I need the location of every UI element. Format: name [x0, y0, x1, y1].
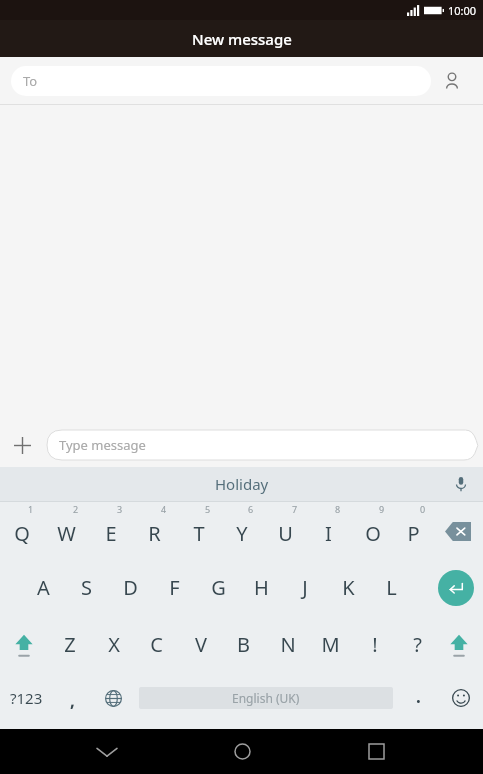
- button[interactable]: .: [398, 674, 438, 722]
- staticText: New message: [192, 29, 292, 49]
- staticText: F: [169, 574, 180, 601]
- staticText: 8: [335, 503, 341, 515]
- staticText: 9: [379, 503, 385, 515]
- button[interactable]: M: [309, 616, 352, 672]
- staticText: T: [193, 520, 205, 547]
- staticText: X: [108, 631, 120, 658]
- staticText: 7: [292, 503, 298, 515]
- staticText: J: [302, 574, 308, 601]
- staticText: B: [237, 631, 250, 658]
- button[interactable]: H: [240, 559, 283, 615]
- button[interactable]: Emoji: [440, 674, 482, 722]
- button[interactable]: 6: [220, 502, 263, 558]
- staticText: D: [123, 574, 138, 601]
- button[interactable]: 4: [133, 502, 176, 558]
- staticText: R: [148, 520, 161, 547]
- staticText: A: [37, 574, 50, 601]
- button[interactable]: Holiday: [215, 474, 269, 494]
- staticText: C: [150, 631, 163, 658]
- button[interactable]: ,: [52, 674, 92, 722]
- button[interactable]: 1: [0, 502, 43, 558]
- button[interactable]: 5: [177, 502, 220, 558]
- button[interactable]: D: [109, 559, 152, 615]
- button[interactable]: Back: [79, 729, 135, 774]
- button[interactable]: ?123: [2, 674, 50, 722]
- staticText: Q: [14, 520, 30, 547]
- button[interactable]: G: [197, 559, 240, 615]
- staticText: O: [365, 520, 381, 547]
- button[interactable]: J: [283, 559, 326, 615]
- staticText: S: [81, 574, 92, 601]
- button[interactable]: 3: [89, 502, 132, 558]
- staticText: Y: [236, 520, 248, 547]
- staticText: K: [342, 574, 355, 601]
- button[interactable]: Change language: [93, 674, 133, 722]
- button[interactable]: B: [222, 616, 265, 672]
- staticText: N: [280, 631, 296, 658]
- staticText: 3: [117, 503, 123, 515]
- staticText: .: [416, 685, 421, 708]
- button[interactable]: K: [327, 559, 370, 615]
- button[interactable]: Home: [214, 729, 270, 774]
- button[interactable]: N: [266, 616, 309, 672]
- staticText: I: [325, 520, 332, 547]
- button[interactable]: A: [22, 559, 65, 615]
- button[interactable]: Shift: [2, 619, 46, 671]
- staticText: English (UK): [232, 690, 300, 706]
- button[interactable]: Voice input: [447, 470, 475, 498]
- button[interactable]: Add attachment: [8, 431, 36, 459]
- staticText: 10:00: [448, 3, 477, 18]
- staticText: 1: [28, 503, 34, 515]
- button[interactable]: ?: [396, 616, 439, 672]
- staticText: H: [254, 574, 269, 601]
- button[interactable]: Pick contact: [431, 57, 472, 105]
- button[interactable]: 2: [45, 502, 88, 558]
- button[interactable]: 0: [392, 502, 435, 558]
- button[interactable]: S: [65, 559, 108, 615]
- staticText: G: [211, 574, 226, 601]
- staticText: Type message: [59, 436, 146, 454]
- staticText: P: [407, 520, 420, 547]
- staticText: U: [278, 520, 293, 547]
- button[interactable]: Enter: [433, 565, 479, 611]
- staticText: V: [195, 631, 207, 658]
- button[interactable]: To: [11, 66, 431, 96]
- staticText: Z: [64, 631, 76, 658]
- button[interactable]: Shift: [437, 619, 481, 671]
- button[interactable]: 9: [351, 502, 394, 558]
- button[interactable]: !: [353, 616, 396, 672]
- staticText: 2: [73, 503, 79, 515]
- staticText: To: [23, 72, 38, 90]
- button[interactable]: Type message: [47, 430, 483, 460]
- staticText: 5: [205, 503, 211, 515]
- button[interactable]: F: [153, 559, 196, 615]
- staticText: 4: [161, 503, 167, 515]
- button[interactable]: C: [135, 616, 178, 672]
- button[interactable]: L: [370, 559, 413, 615]
- button[interactable]: Backspace: [436, 506, 480, 556]
- button[interactable]: X: [92, 616, 135, 672]
- staticText: ?: [413, 631, 422, 658]
- button[interactable]: English (UK): [139, 687, 393, 709]
- button[interactable]: V: [179, 616, 222, 672]
- staticText: 6: [248, 503, 254, 515]
- staticText: 0: [420, 503, 426, 515]
- staticText: !: [372, 631, 378, 658]
- button[interactable]: 7: [264, 502, 307, 558]
- staticText: ?123: [10, 688, 43, 708]
- staticText: ,: [70, 689, 75, 712]
- staticText: E: [105, 520, 117, 547]
- button[interactable]: Z: [48, 616, 91, 672]
- button[interactable]: 8: [307, 502, 350, 558]
- staticText: L: [386, 574, 397, 601]
- staticText: M: [321, 631, 340, 658]
- button[interactable]: Recents: [348, 729, 404, 774]
- staticText: W: [57, 520, 76, 547]
